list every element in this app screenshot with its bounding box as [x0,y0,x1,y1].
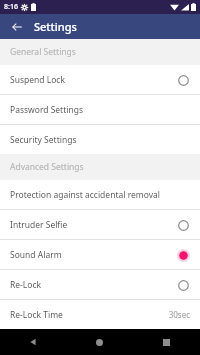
button[interactable]: Re-Lock [0,270,200,299]
button[interactable]: Password Settings [0,95,200,124]
button[interactable]: Toggle off [176,278,190,292]
button[interactable]: Suspend Lock [0,65,200,94]
staticText: Password Settings [10,104,190,116]
button[interactable]: Back [0,329,66,355]
button[interactable]: Sound Alarm [0,240,200,269]
staticText: Sound Alarm [10,249,176,261]
button[interactable]: Security Settings [0,125,200,154]
staticText: General Settings [10,46,76,58]
button[interactable]: Re-Lock Time [0,300,200,329]
button[interactable]: Recent apps [133,329,200,355]
button[interactable]: Protection against accidental removal [0,180,200,209]
button[interactable]: Back [0,14,34,39]
staticText: Protection against accidental removal [10,189,190,201]
staticText: Suspend Lock [10,74,176,86]
staticText: Re-Lock [10,279,176,291]
staticText: Security Settings [10,134,190,146]
button[interactable]: Home [66,329,133,355]
button[interactable]: Toggle on [176,248,190,262]
staticText: 30sec [168,309,190,320]
staticText: Advanced Settings [10,161,84,173]
staticText: Settings [34,19,77,34]
staticText: 8:16 [4,2,18,12]
staticText: Re-Lock Time [10,309,168,321]
button[interactable]: Intruder Selfie [0,210,200,239]
staticText: Intruder Selfie [10,219,176,231]
button[interactable]: Toggle off [176,73,190,87]
button[interactable]: Toggle off [176,218,190,232]
